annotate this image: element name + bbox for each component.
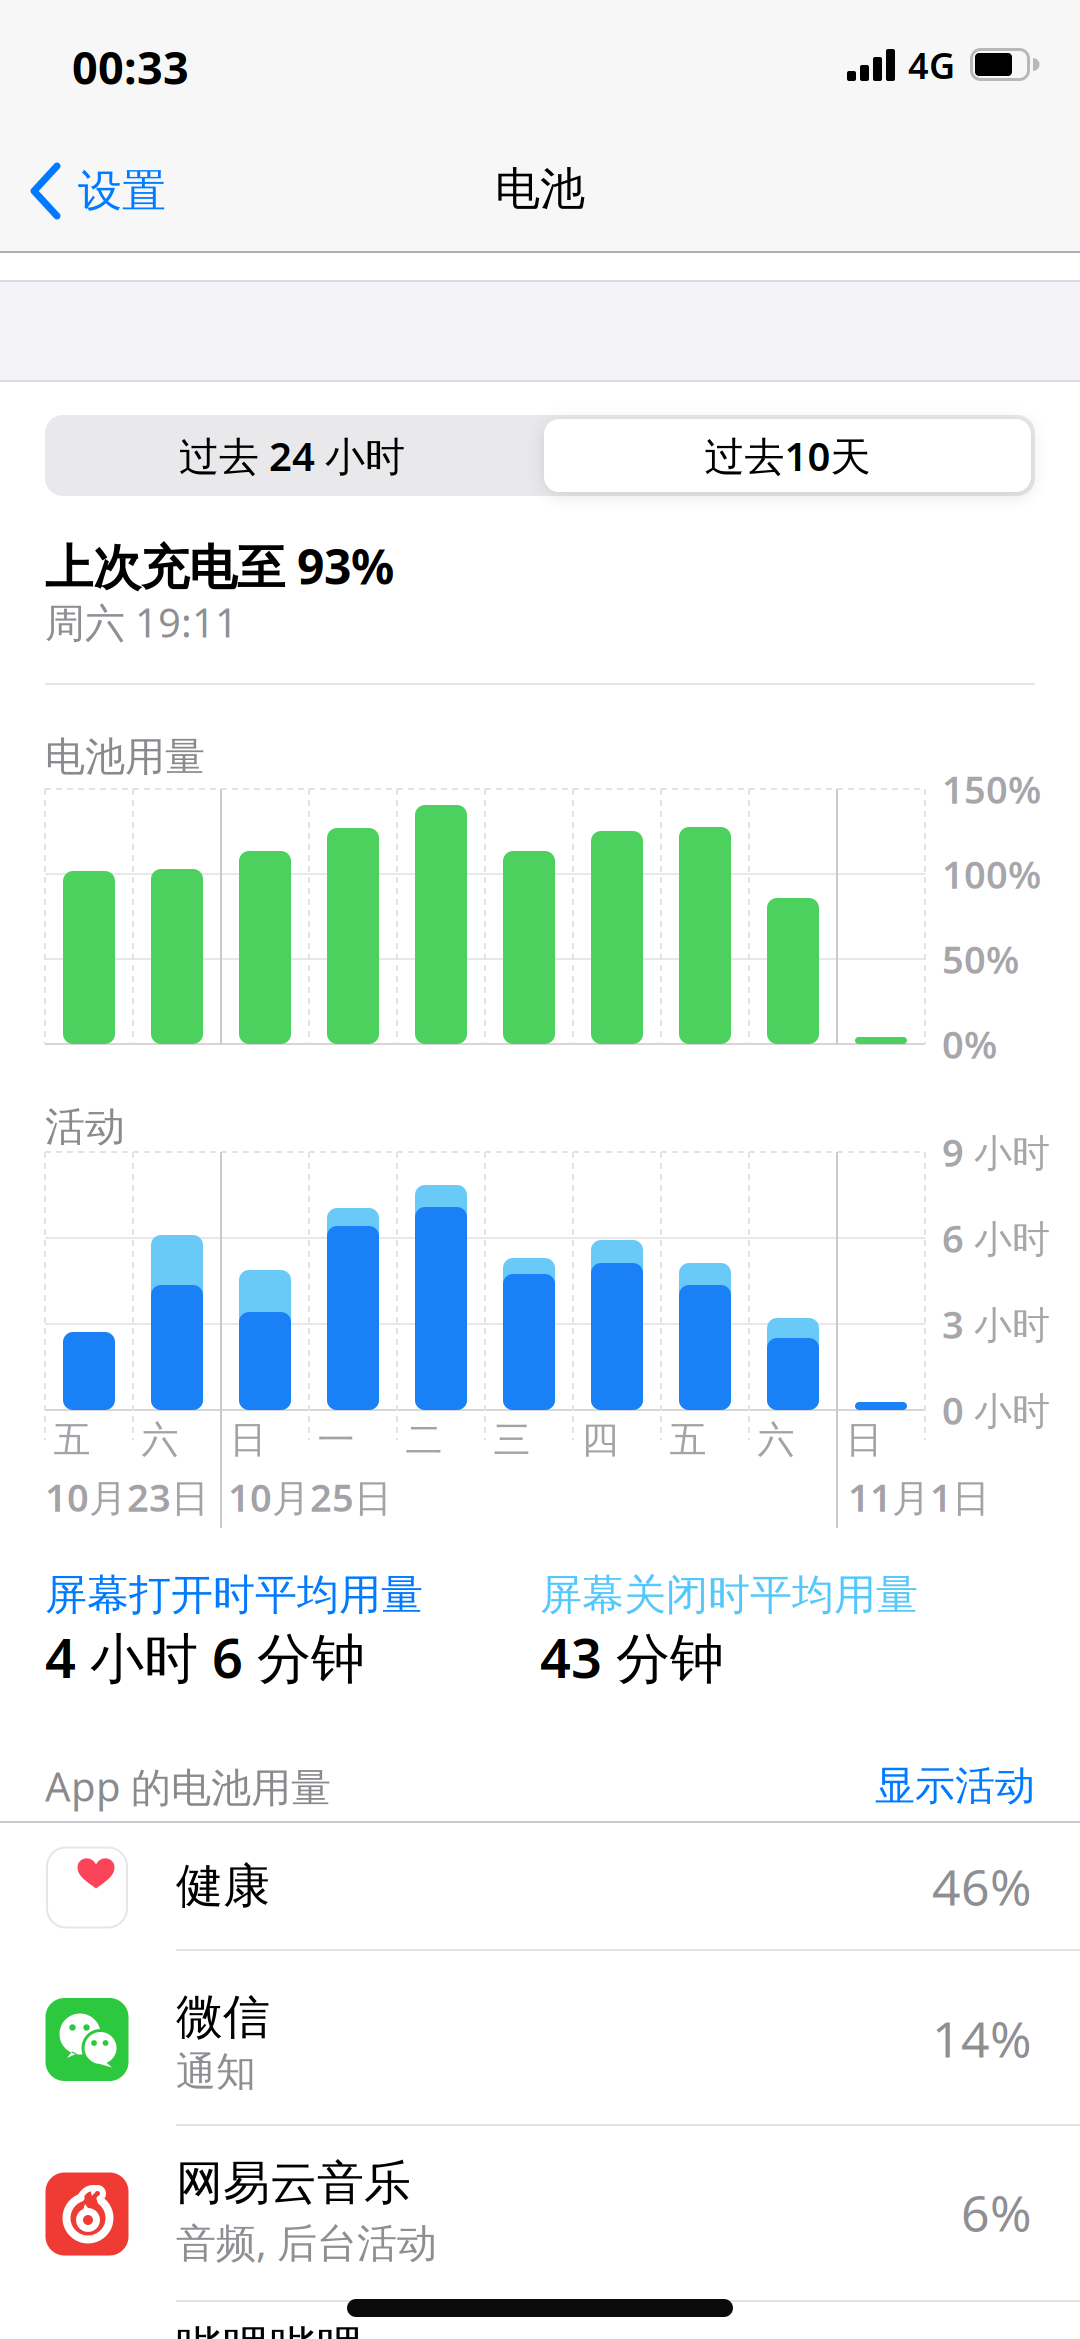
staticText: 150% <box>942 764 1041 814</box>
staticText: 11月1日 <box>848 1472 990 1522</box>
staticText: 4G <box>908 41 955 89</box>
staticText: 10月23日 <box>45 1472 209 1522</box>
staticText: 五 <box>53 1417 90 1463</box>
staticText: 六 <box>141 1417 178 1463</box>
staticText: 周六 19:11 <box>45 595 238 648</box>
staticText: 00:33 <box>72 37 189 97</box>
button[interactable]: 设置 <box>0 141 220 241</box>
staticText: 五 <box>669 1417 706 1463</box>
staticText: 上次充电至 93% <box>45 534 394 598</box>
staticText: 通知 <box>176 2047 256 2096</box>
staticText: 10月25日 <box>228 1472 392 1522</box>
staticText: 46% <box>932 1853 1032 1919</box>
staticText: 一 <box>317 1417 354 1463</box>
button[interactable]: 显示活动 <box>795 1751 1035 1821</box>
staticText: 哔哩哔哩 <box>176 2320 364 2339</box>
staticText: 活动 <box>45 1102 125 1151</box>
staticText: 6 小时 <box>942 1213 1050 1263</box>
staticText: 6% <box>961 2179 1032 2245</box>
staticText: 过去10天 <box>704 429 870 482</box>
staticText: 日 <box>229 1417 266 1463</box>
staticText: 三 <box>493 1417 530 1463</box>
button[interactable]: 健康 <box>0 1822 1080 1950</box>
staticText: 设置 <box>78 164 166 218</box>
staticText: 0 小时 <box>942 1385 1050 1435</box>
staticText: 六 <box>757 1417 794 1463</box>
staticText: 健康 <box>176 1857 270 1915</box>
staticText: 日 <box>845 1417 882 1463</box>
staticText: 过去 24 小时 <box>179 429 405 482</box>
staticText: 100% <box>942 849 1041 899</box>
staticText: 屏幕关闭时平均用量 <box>540 1569 918 1621</box>
staticText: 4 小时 6 分钟 <box>45 1621 365 1693</box>
staticText: 屏幕打开时平均用量 <box>45 1569 423 1621</box>
staticText: 微信 <box>176 1988 270 2046</box>
button[interactable]: 过去 24 小时 <box>45 415 539 496</box>
button[interactable]: 微信 <box>0 1952 1080 2125</box>
staticText: 网易云音乐 <box>176 2154 411 2212</box>
staticText: 音频, 后台活动 <box>176 2215 437 2268</box>
staticText: 电池用量 <box>45 732 205 781</box>
staticText: 二 <box>405 1417 442 1463</box>
staticText: 显示活动 <box>875 1761 1035 1810</box>
staticText: 0% <box>942 1019 997 1069</box>
staticText: 9 小时 <box>942 1127 1050 1177</box>
staticText: 3 小时 <box>942 1299 1050 1349</box>
staticText: 电池 <box>495 161 585 217</box>
button[interactable]: 过去10天 <box>540 415 1034 496</box>
button[interactable]: 网易云音乐 <box>0 2125 1080 2301</box>
staticText: App 的电池用量 <box>45 1759 331 1813</box>
staticText: 43 分钟 <box>540 1621 724 1693</box>
staticText: 四 <box>581 1417 618 1463</box>
staticText: 50% <box>942 934 1019 984</box>
staticText: 14% <box>932 2005 1032 2071</box>
